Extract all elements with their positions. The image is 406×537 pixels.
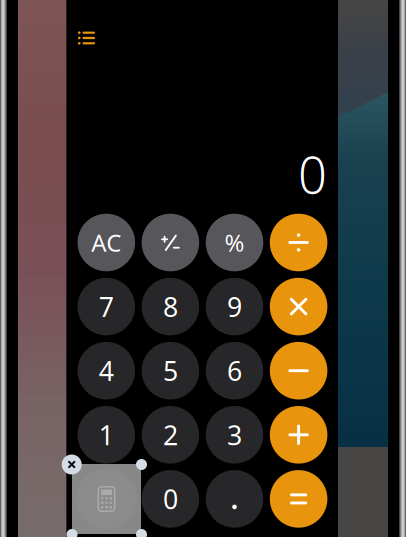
- staticText: 1: [99, 417, 114, 452]
- button[interactable]: 1: [77, 406, 135, 464]
- button[interactable]: %: [206, 214, 263, 271]
- button[interactable]: Remove widget: [62, 454, 82, 474]
- button[interactable]: 0: [142, 470, 199, 528]
- staticText: 9: [227, 289, 242, 324]
- button[interactable]: 8: [142, 278, 199, 335]
- staticText: AC: [91, 227, 121, 258]
- button[interactable]: 5: [142, 342, 199, 399]
- button[interactable]: Add: [270, 406, 327, 464]
- button[interactable]: 6: [206, 342, 263, 399]
- staticText: 0: [163, 481, 178, 517]
- button[interactable]: Subtract: [270, 342, 327, 399]
- staticText: 0: [298, 140, 327, 208]
- staticText: 6: [227, 353, 242, 388]
- button[interactable]: [77, 470, 135, 528]
- button[interactable]: 4: [77, 342, 135, 399]
- button[interactable]: 2: [142, 406, 199, 464]
- button[interactable]: Plus minus: [142, 214, 199, 271]
- staticText: 2: [163, 417, 178, 452]
- button[interactable]: AC: [77, 214, 135, 271]
- staticText: 3: [227, 417, 242, 452]
- staticText: 7: [99, 289, 114, 324]
- button[interactable]: 3: [206, 406, 263, 464]
- button[interactable]: Equals: [270, 470, 327, 528]
- button[interactable]: 9: [206, 278, 263, 335]
- staticText: 5: [163, 353, 178, 388]
- staticText: 8: [163, 289, 178, 324]
- button[interactable]: Decimal point: [206, 470, 263, 528]
- staticText: %: [224, 227, 244, 258]
- button[interactable]: History: [69, 22, 103, 54]
- button[interactable]: Multiply: [270, 278, 327, 335]
- staticText: 4: [99, 353, 114, 388]
- button[interactable]: Divide: [270, 214, 327, 271]
- button[interactable]: 7: [77, 278, 135, 335]
